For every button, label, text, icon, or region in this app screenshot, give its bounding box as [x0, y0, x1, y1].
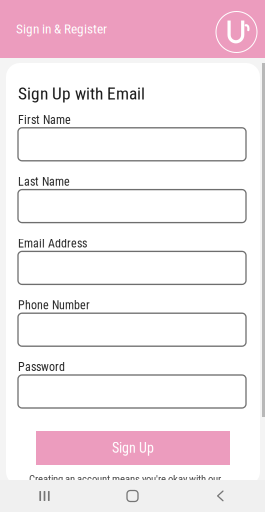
staticText: Last Name — [18, 175, 70, 189]
button[interactable]: Sign in & Register — [0, 0, 107, 58]
button[interactable]: Recent apps — [0, 480, 88, 512]
staticText: Password — [18, 360, 65, 374]
button[interactable]: Sign Up — [36, 431, 230, 465]
staticText: Sign Up — [112, 440, 154, 456]
staticText: First Name — [18, 113, 71, 127]
staticText: Sign in & Register — [16, 21, 107, 37]
button[interactable]: Home — [216, 5, 265, 52]
staticText: Email Address — [18, 236, 87, 250]
staticText: Sign Up with Email — [18, 83, 145, 104]
button[interactable]: Phone Number — [18, 313, 246, 346]
button[interactable]: Email Address — [18, 251, 246, 284]
button[interactable]: First Name — [18, 128, 246, 161]
button[interactable]: Back — [176, 480, 264, 512]
button[interactable]: Password — [18, 375, 246, 408]
button[interactable]: Home — [88, 480, 176, 512]
staticText: Phone Number — [18, 298, 90, 312]
staticText: Creating an account means you're okay wi… — [29, 473, 221, 485]
button[interactable]: Last Name — [18, 190, 246, 223]
